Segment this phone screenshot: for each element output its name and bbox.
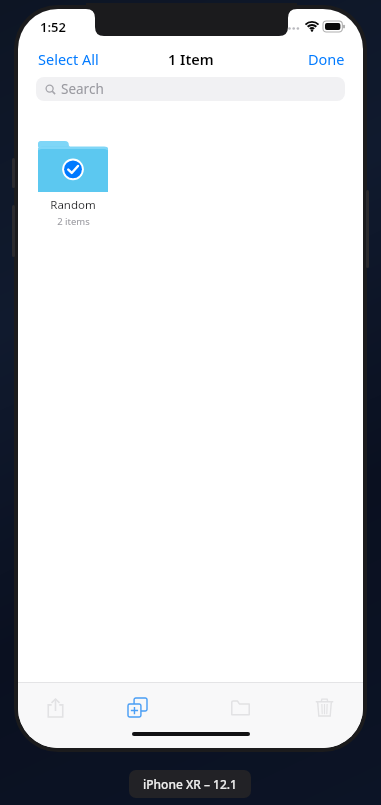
button[interactable]: Done: [290, 45, 363, 73]
staticText: Random: [50, 197, 96, 213]
button[interactable]: Select All: [18, 45, 119, 73]
staticText: 1:52: [40, 18, 66, 36]
button[interactable]: Search: [36, 77, 345, 101]
staticText: Done: [308, 49, 345, 69]
button[interactable]: Random: [34, 135, 112, 228]
staticText: Search: [61, 80, 104, 98]
staticText: 2 items: [57, 215, 90, 228]
staticText: iPhone XR – 12.1: [143, 776, 237, 792]
button[interactable]: iPhone XR – 12.1: [129, 770, 251, 798]
staticText: 1 Item: [168, 49, 214, 69]
staticText: Select All: [38, 49, 99, 69]
button[interactable]: Delete: [307, 690, 341, 724]
button[interactable]: Duplicate: [120, 690, 154, 724]
button[interactable]: Move to folder: [223, 690, 257, 724]
button[interactable]: Share: [38, 690, 72, 724]
